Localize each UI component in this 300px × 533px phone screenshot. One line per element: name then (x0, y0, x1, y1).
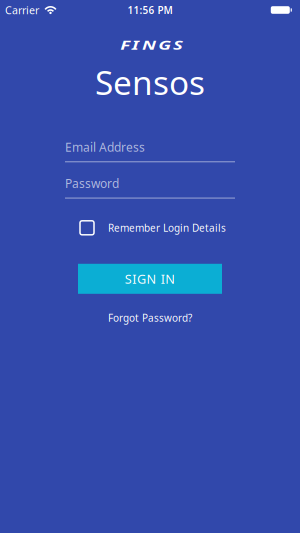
staticText: Email Address (65, 139, 145, 155)
button[interactable]: Forgot Password? (108, 311, 192, 325)
button[interactable]: Password (65, 177, 235, 199)
staticText: Forgot Password? (108, 311, 192, 325)
staticText: Carrier (5, 3, 39, 17)
button[interactable]: Remember Login Details (0, 221, 300, 235)
button[interactable]: SIGN IN (78, 264, 222, 294)
staticText: Remember Login Details (108, 221, 226, 235)
staticText: SIGN IN (125, 270, 175, 287)
staticText: FINGS (131, 37, 171, 53)
button[interactable]: Email Address (65, 141, 235, 162)
staticText: Password (65, 175, 119, 191)
staticText: Sensos (95, 60, 205, 104)
staticText: 11:56 PM (127, 3, 172, 17)
